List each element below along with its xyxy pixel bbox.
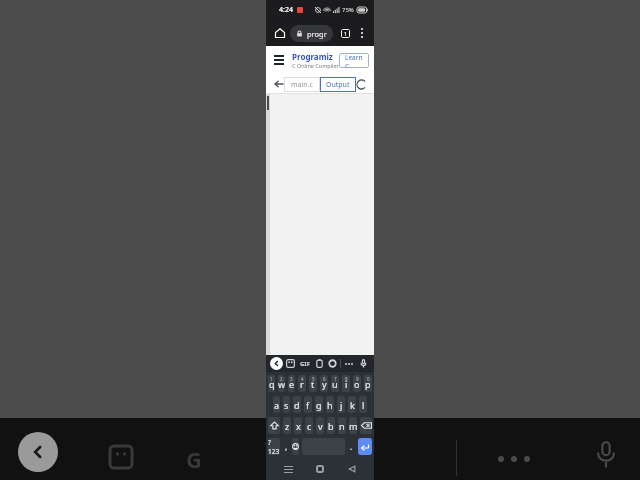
- staticText: b: [328, 420, 334, 432]
- button[interactable]: Dark mode: [353, 76, 369, 92]
- button[interactable]: k: [348, 396, 356, 413]
- button[interactable]: Voice input: [357, 357, 370, 370]
- button[interactable]: w: [278, 375, 285, 392]
- staticText: p: [365, 378, 371, 390]
- button[interactable]: q: [268, 375, 275, 392]
- staticText: f: [306, 399, 310, 411]
- staticText: 1: [270, 376, 273, 382]
- staticText: programiz.com/c-progra: [307, 29, 327, 39]
- staticText: o: [354, 378, 360, 390]
- button[interactable]: n: [338, 417, 346, 434]
- staticText: t: [311, 378, 315, 390]
- button[interactable]: l: [359, 396, 367, 413]
- button[interactable]: Recents: [278, 459, 298, 479]
- button[interactable]: f: [304, 396, 312, 413]
- button[interactable]: Back: [271, 76, 287, 92]
- button[interactable]: Home: [310, 459, 330, 479]
- staticText: 75%: [342, 6, 354, 14]
- staticText: c: [307, 420, 312, 432]
- staticText: 1: [344, 30, 348, 37]
- button[interactable]: u: [331, 375, 339, 392]
- button[interactable]: Shift: [268, 417, 280, 434]
- staticText: j: [340, 399, 343, 411]
- staticText: d: [294, 399, 300, 411]
- staticText: 3: [290, 376, 293, 382]
- button[interactable]: j: [337, 396, 345, 413]
- button[interactable]: programiz.com/c-progra: [290, 25, 333, 42]
- button[interactable]: t: [309, 375, 317, 392]
- button[interactable]: More options: [354, 25, 370, 41]
- staticText: Learn C: [345, 53, 363, 68]
- button[interactable]: y: [320, 375, 328, 392]
- button[interactable]: GIF: [298, 358, 312, 370]
- staticText: y: [322, 378, 327, 390]
- button[interactable]: Menu: [271, 52, 287, 68]
- staticText: k: [350, 399, 355, 411]
- staticText: G: [186, 444, 202, 474]
- staticText: Programiz: [292, 51, 333, 62]
- button[interactable]: s: [283, 396, 290, 413]
- staticText: s: [284, 399, 289, 411]
- staticText: 0: [367, 376, 370, 382]
- button[interactable]: Home: [270, 23, 290, 43]
- button[interactable]: v: [316, 417, 324, 434]
- button[interactable]: i: [342, 375, 350, 392]
- staticText: x: [296, 420, 301, 432]
- button[interactable]: d: [293, 396, 301, 413]
- button[interactable]: Clipboard: [313, 357, 326, 370]
- button[interactable]: ,: [282, 437, 290, 456]
- button[interactable]: Enter: [358, 438, 372, 455]
- staticText: 9: [356, 376, 359, 382]
- button[interactable]: m: [349, 417, 357, 434]
- staticText: 7: [334, 376, 337, 382]
- staticText: l: [362, 399, 365, 411]
- staticText: 6: [323, 376, 326, 382]
- button[interactable]: b: [327, 417, 335, 434]
- button[interactable]: h: [326, 396, 334, 413]
- button[interactable]: a: [273, 396, 280, 413]
- button[interactable]: Collapse toolbar: [270, 357, 283, 370]
- button[interactable]: Tabs: [336, 24, 354, 42]
- staticText: a: [274, 399, 280, 411]
- button[interactable]: p: [364, 375, 372, 392]
- staticText: Output: [326, 80, 350, 90]
- staticText: i: [345, 378, 348, 390]
- staticText: v: [318, 420, 323, 432]
- staticText: e: [289, 378, 295, 390]
- button[interactable]: main.c: [284, 77, 320, 92]
- staticText: 2: [280, 376, 283, 382]
- staticText: u: [332, 378, 338, 390]
- staticText: 4: [301, 376, 304, 382]
- staticText: GIF: [300, 360, 310, 368]
- staticText: m: [349, 420, 357, 432]
- button[interactable]: r: [298, 375, 306, 392]
- button[interactable]: c: [305, 417, 313, 434]
- button[interactable]: x: [294, 417, 302, 434]
- button[interactable]: Backspace: [360, 417, 372, 434]
- button[interactable]: Settings: [326, 357, 339, 370]
- staticText: main.c: [291, 80, 313, 90]
- button[interactable]: Emoji: [292, 438, 299, 455]
- button[interactable]: z: [283, 417, 291, 434]
- button[interactable]: More: [342, 360, 356, 368]
- button[interactable]: ?123: [268, 438, 280, 455]
- staticText: 5: [312, 376, 315, 382]
- button[interactable]: Back: [342, 459, 362, 479]
- staticText: n: [339, 420, 345, 432]
- button[interactable]: .: [347, 437, 356, 456]
- button[interactable]: Output: [320, 77, 356, 92]
- staticText: w: [278, 378, 285, 390]
- staticText: 8: [345, 376, 348, 382]
- button[interactable]: e: [288, 375, 295, 392]
- staticText: h: [327, 399, 333, 411]
- button[interactable]: Stickers: [284, 357, 297, 370]
- staticText: ,: [285, 441, 288, 452]
- button[interactable]: o: [353, 375, 361, 392]
- button[interactable]: g: [315, 396, 323, 413]
- staticText: r: [300, 378, 304, 390]
- staticText: g: [316, 399, 322, 411]
- staticText: .: [350, 441, 353, 452]
- button[interactable]: Learn C: [339, 53, 369, 68]
- staticText: 4:24: [279, 5, 293, 15]
